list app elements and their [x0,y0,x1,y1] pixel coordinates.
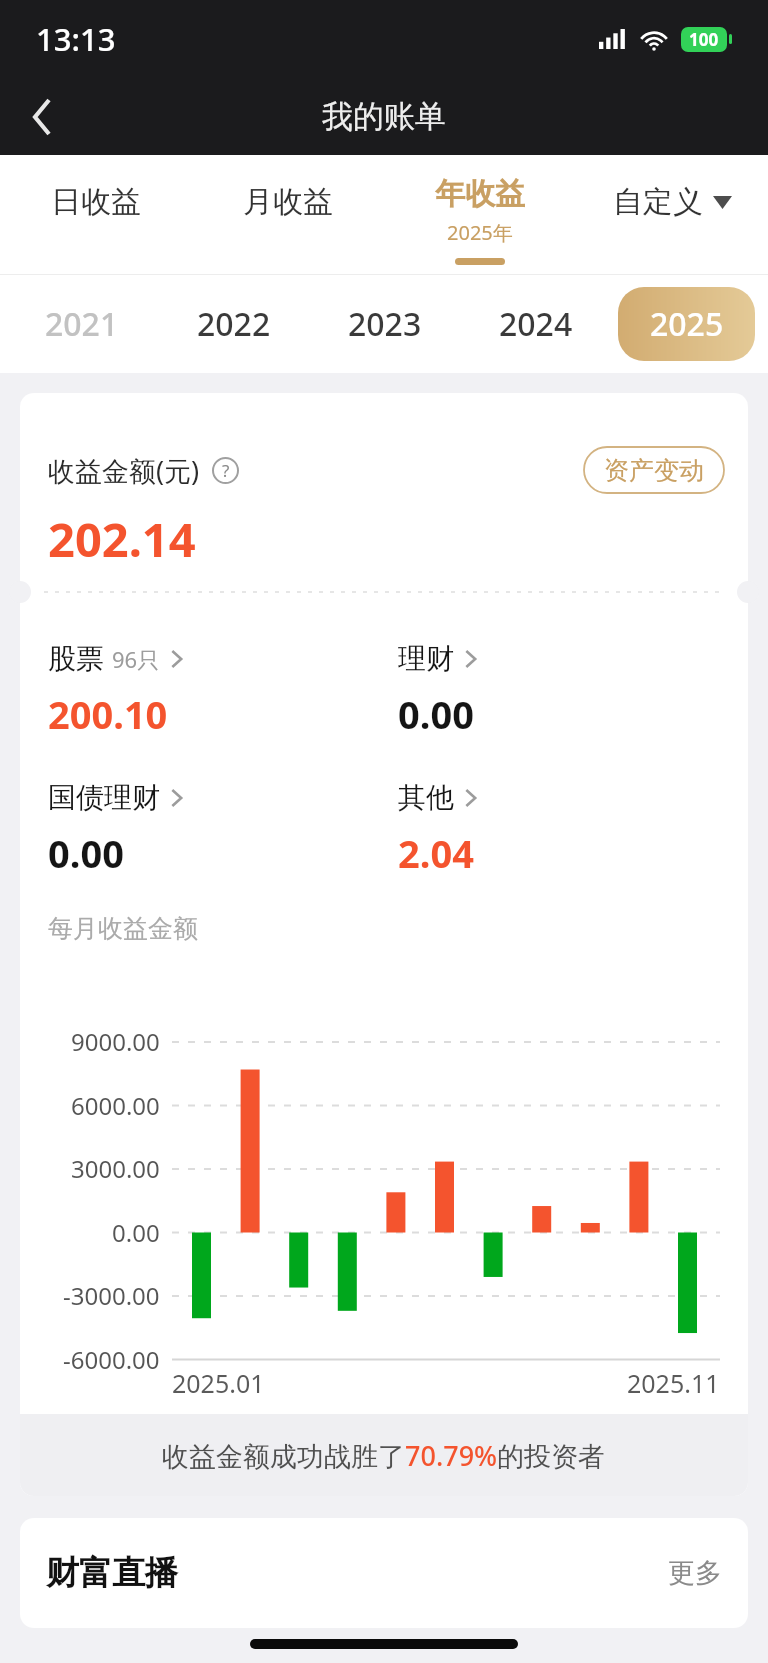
staticText: 2025.01 [172,1366,265,1400]
button[interactable]: Back [12,86,74,148]
staticText: 收益金额(元) [48,452,200,489]
staticText: ? [222,459,230,482]
button[interactable]: 股票 [48,641,398,740]
staticText: 股票 [48,641,104,676]
staticText: 6000.00 [71,1089,160,1122]
staticText: 年收益 [435,175,525,213]
button[interactable]: 年收益 [384,155,576,275]
staticText: 每月收益金额 [48,913,198,944]
staticText: 2023 [348,302,422,346]
staticText: 0.00 [112,1216,160,1249]
staticText: 2025年 [447,219,513,246]
button[interactable]: 2022 [165,287,302,361]
staticText: 13:13 [36,18,116,60]
button[interactable]: 国债理财 [48,780,398,879]
staticText: 2024 [499,302,573,346]
staticText: 其他 [398,780,454,815]
staticText: 资产变动 [604,455,704,486]
button[interactable]: 2023 [316,287,453,361]
staticText: 我的账单 [322,97,446,136]
button[interactable]: 自定义 [576,155,768,275]
button[interactable]: 2024 [467,287,604,361]
staticText: 财富直播 [46,1552,178,1594]
staticText: 3000.00 [71,1152,160,1185]
staticText: 96只 [112,644,160,674]
staticText: -6000.00 [63,1343,160,1376]
button[interactable]: 2025 [618,287,755,361]
button[interactable]: Help [212,457,239,484]
staticText: 2025 [650,302,724,346]
staticText: -3000.00 [63,1279,160,1312]
staticText: 2021 [45,302,119,346]
staticText: 202.14 [48,507,196,571]
staticText: 9000.00 [71,1025,160,1058]
staticText: 2022 [197,302,271,346]
button[interactable]: 其他 [398,780,748,879]
staticText: 理财 [398,641,454,676]
staticText: 国债理财 [48,780,160,815]
button[interactable]: 资产变动 [584,447,724,493]
staticText: 更多 [668,1556,722,1590]
staticText: 0.00 [398,688,474,740]
staticText: 0.00 [48,827,124,879]
staticText: 100 [689,28,719,51]
button[interactable]: 更多 [668,1556,722,1590]
staticText: 月收益 [243,183,333,221]
button[interactable]: 理财 [398,641,748,740]
staticText: 2.04 [398,827,474,879]
button[interactable]: 月收益 [192,155,384,275]
button[interactable]: 日收益 [0,155,192,275]
staticText: 200.10 [48,688,168,740]
button[interactable]: 2021 [13,287,151,361]
staticText: 2025.11 [627,1366,720,1400]
staticText: 自定义 [613,183,703,221]
staticText: 收益金额成功战胜了70.79%的投资者 [162,1437,606,1474]
staticText: 日收益 [51,183,141,221]
